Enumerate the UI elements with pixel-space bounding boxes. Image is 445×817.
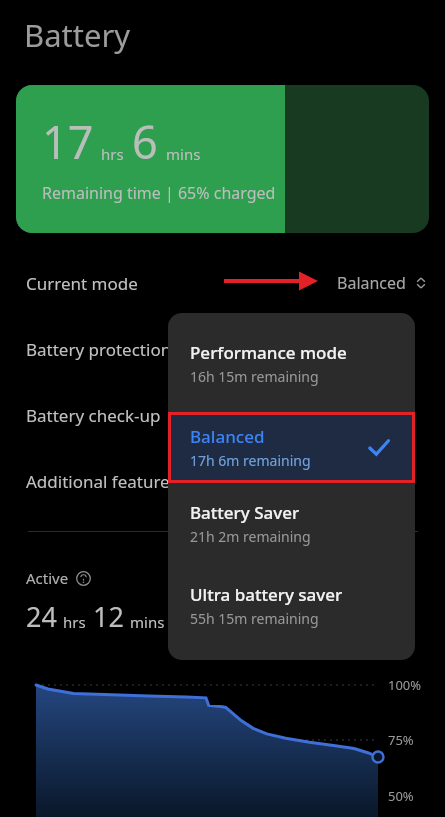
staticText: Additional features (26, 470, 178, 493)
staticText: 100% (388, 676, 422, 694)
staticText: 17 (42, 111, 94, 172)
staticText: Active (26, 568, 69, 588)
staticText: 55h 15m remaining (190, 609, 319, 628)
staticText: 17h 6m remaining (190, 451, 311, 470)
staticText: Remaining time | 65% charged (42, 182, 276, 204)
staticText: Battery protection (26, 338, 172, 361)
staticText: Ultra battery saver (190, 583, 343, 606)
staticText: 6 (132, 111, 158, 172)
button[interactable]: Performance mode (168, 341, 415, 386)
staticText: 24 (26, 598, 57, 635)
staticText: mins (130, 612, 165, 632)
staticText: 21h 2m remaining (190, 527, 311, 546)
button[interactable]: Current mode (0, 265, 445, 301)
staticText: hrs (101, 144, 124, 164)
other: Selected (368, 437, 390, 459)
staticText: hrs (63, 612, 86, 632)
staticText: 12 (93, 598, 124, 635)
staticText: 75% (388, 731, 414, 749)
staticText: Battery (24, 14, 131, 56)
staticText: Balanced (190, 425, 265, 448)
staticText: 16h 15m remaining (190, 367, 319, 386)
button[interactable]: Additional features (0, 463, 445, 499)
staticText: Battery Saver (190, 501, 300, 524)
staticText: Performance mode (190, 341, 347, 364)
staticText: Balanced (337, 272, 406, 294)
button[interactable]: Battery check-up (0, 397, 445, 433)
staticText: 50% (388, 787, 414, 805)
button[interactable]: Balanced (168, 412, 415, 483)
staticText: mins (166, 144, 201, 164)
other: Help about Active time (76, 571, 91, 586)
button[interactable]: Battery protection (0, 331, 445, 367)
staticText: Current mode (26, 272, 138, 295)
button[interactable]: Battery Saver (168, 501, 415, 546)
button[interactable]: Ultra battery saver (168, 583, 415, 628)
staticText: Battery check-up (26, 404, 161, 427)
button[interactable]: 17 (16, 85, 429, 233)
